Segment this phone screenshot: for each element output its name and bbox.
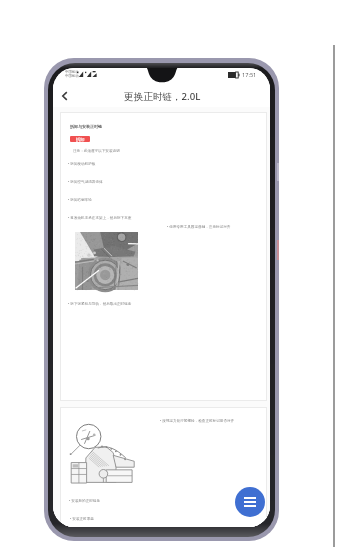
staticText: • 将发动机支承在支架上，然后拆下支座 [68,215,132,220]
staticText: 更换正时链，2.0L [124,90,201,103]
staticText: • 拆卸空气滤清器壳体 [68,179,103,184]
button[interactable]: Back [57,88,73,104]
button[interactable]: 拆卸 [70,136,90,142]
staticText: • 拆卸发动机护板 [68,161,96,166]
staticText: • 使用专用工具固定曲轴，注意标记对齐 [167,224,231,229]
staticText: • 拆卸右侧车轮 [68,197,92,202]
staticText: 中国移动 [65,70,79,74]
staticText: 注意：必须遵守以下安装说明 [73,149,120,154]
staticText: • 按规定力矩拧紧螺栓，检查正时标记是否对齐 [160,418,235,423]
staticText: • 安装正时罩盖 [70,516,94,521]
staticText: 17:51 [242,71,257,79]
button[interactable]: Menu [235,487,265,517]
staticText: 中国移动 [65,74,79,78]
staticText: 拆卸与安装正时链 [70,124,102,129]
staticText: • 安装新的正时链条 [69,498,101,503]
staticText: 拆卸 [76,137,85,142]
staticText: • 拆下张紧轮与导轨，然后取出正时链条 [68,301,132,306]
